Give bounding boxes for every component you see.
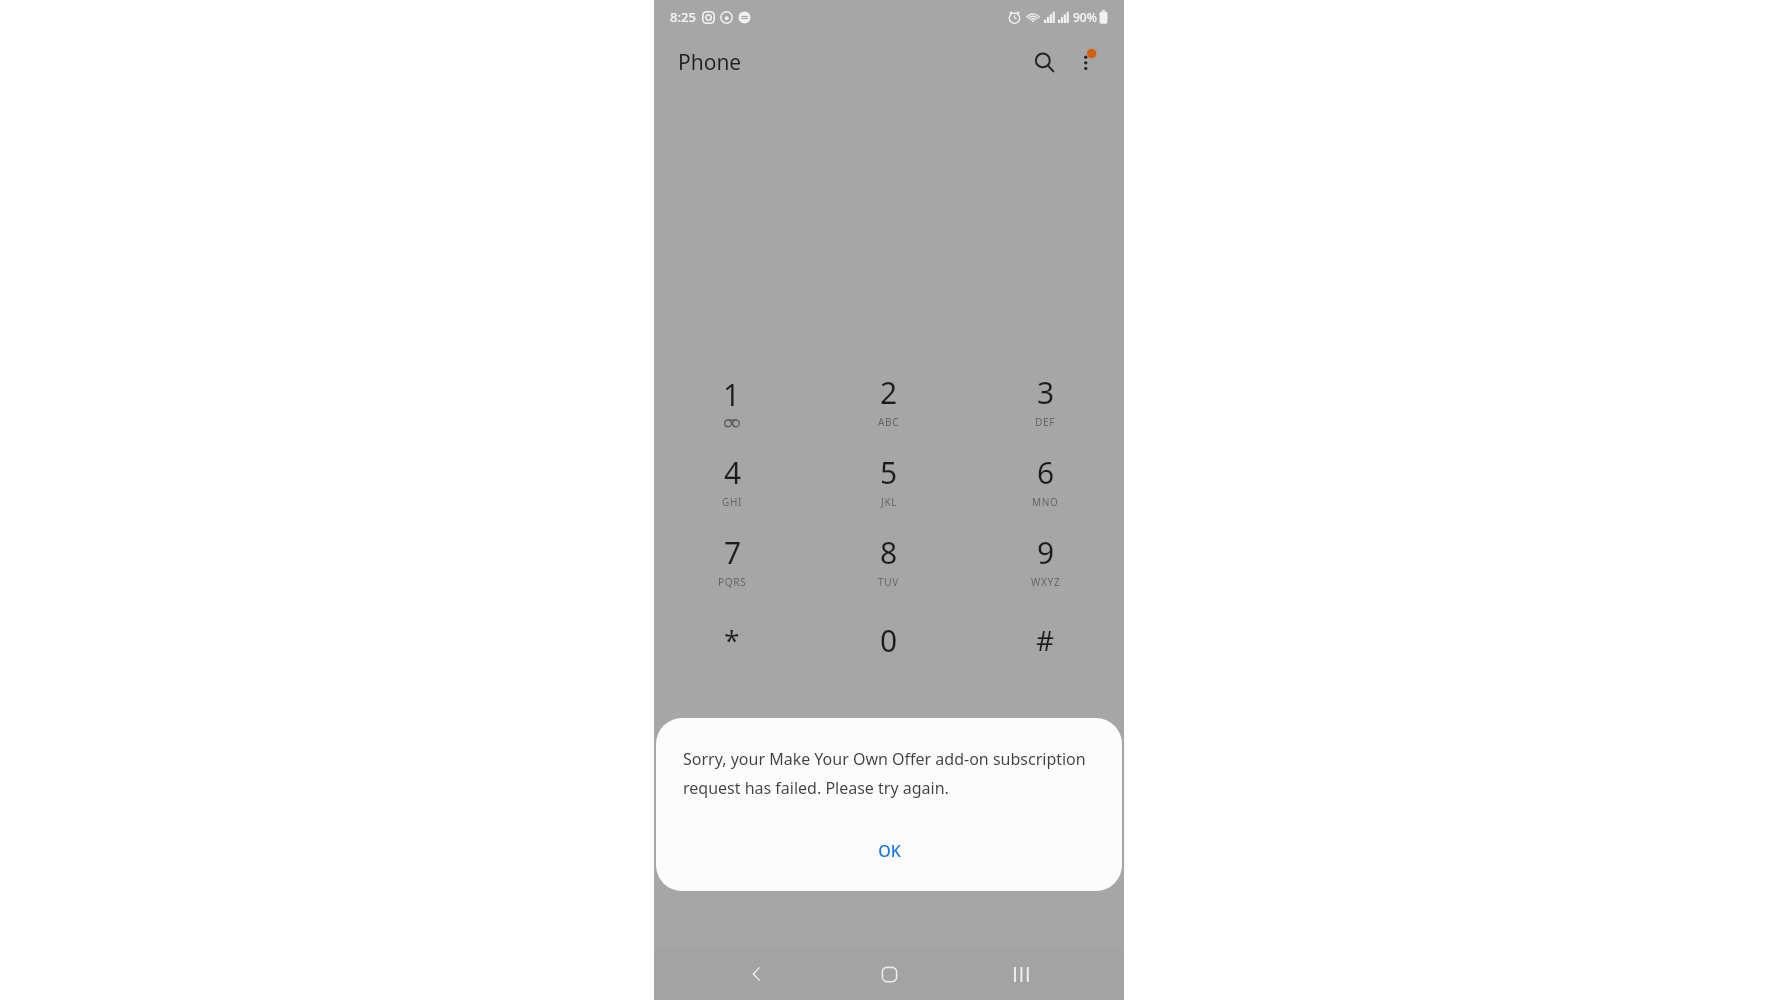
button[interactable]: Recents xyxy=(992,948,1050,1000)
button[interactable]: 9 xyxy=(967,520,1124,600)
staticText: 0 xyxy=(880,620,898,661)
button[interactable]: * xyxy=(654,600,810,680)
staticText: ABC xyxy=(878,415,900,429)
staticText: 7 xyxy=(724,532,742,573)
button[interactable]: 8 xyxy=(810,520,967,600)
button[interactable]: 4 xyxy=(654,440,810,520)
staticText: 8 xyxy=(880,532,898,573)
staticText: 9 xyxy=(1037,532,1055,573)
staticText: Phone xyxy=(678,48,742,77)
staticText: WXYZ xyxy=(1031,575,1061,589)
staticText: 8:25 xyxy=(670,8,696,26)
staticText: # xyxy=(1036,621,1055,659)
staticText: 3 xyxy=(1037,372,1055,413)
button[interactable]: Search xyxy=(1022,40,1066,84)
button[interactable]: 0 xyxy=(810,600,967,680)
staticText: 2 xyxy=(880,372,898,413)
staticText: OK xyxy=(878,840,901,862)
staticText: PQRS xyxy=(718,575,747,589)
staticText: MNO xyxy=(1032,495,1059,509)
staticText: JKL xyxy=(881,495,898,509)
button[interactable]: 3 xyxy=(967,360,1124,440)
staticText: 5 xyxy=(880,452,898,493)
staticText: DEF xyxy=(1035,415,1056,429)
staticText: GHI xyxy=(722,495,743,509)
button[interactable]: More options xyxy=(1066,40,1110,84)
staticText: 4 xyxy=(724,452,742,493)
button[interactable]: 1 xyxy=(654,360,810,440)
staticText: 6 xyxy=(1037,452,1055,493)
button[interactable]: 5 xyxy=(810,440,967,520)
staticText: Sorry, your Make Your Own Offer add-on s… xyxy=(683,748,1095,798)
staticText: 1 xyxy=(723,374,741,415)
button[interactable]: # xyxy=(967,600,1124,680)
staticText: * xyxy=(724,621,740,659)
button[interactable]: OK xyxy=(656,825,1122,877)
staticText: 90% xyxy=(1073,9,1097,25)
button[interactable]: 7 xyxy=(654,520,810,600)
button[interactable]: Back xyxy=(728,948,786,1000)
button[interactable]: Home xyxy=(860,948,918,1000)
button[interactable]: 2 xyxy=(810,360,967,440)
button[interactable]: 6 xyxy=(967,440,1124,520)
staticText: TUV xyxy=(878,575,899,589)
